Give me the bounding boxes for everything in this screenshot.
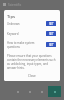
staticText: Keyword [7, 32, 19, 36]
button[interactable]: Recents [39, 89, 44, 94]
button[interactable]: SET [46, 42, 56, 47]
staticText: Scientific [8, 3, 22, 7]
button[interactable]: Menu [2, 2, 7, 7]
staticText: SET [49, 43, 54, 47]
button[interactable]: Action [48, 86, 61, 97]
staticText: SET [49, 32, 54, 36]
staticText: How to make system questions [7, 41, 35, 49]
staticText: Tips [7, 14, 16, 20]
staticText: Please ensure that your questions contai… [7, 54, 57, 70]
staticText: SET [49, 22, 54, 26]
button[interactable]: Close [25, 73, 39, 79]
button[interactable]: SET [46, 21, 56, 26]
staticText: Close [28, 74, 36, 78]
button[interactable]: Back [15, 89, 20, 94]
staticText: Unknown [7, 22, 20, 26]
button[interactable]: SET [46, 31, 56, 36]
button[interactable]: Home [27, 89, 32, 94]
